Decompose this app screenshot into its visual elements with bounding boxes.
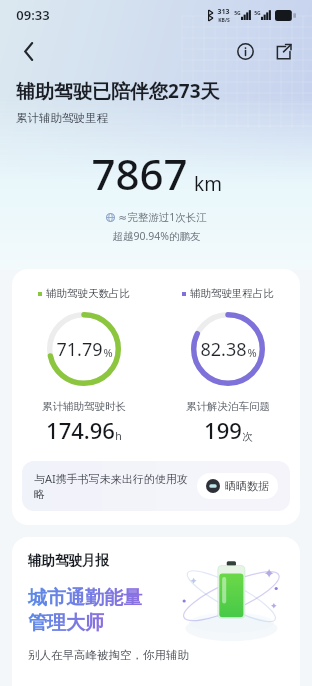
staticText: 199 [204,415,242,445]
staticText: 313 [217,7,230,17]
staticText: 城市通勤能量 [28,586,142,610]
button[interactable]: Info [228,34,262,68]
staticText: 次 [242,430,253,443]
staticText: 辅助驾驶天数占比 [46,287,130,300]
staticText: 晒晒数据 [225,479,269,493]
button[interactable]: 晒晒数据 [197,473,278,499]
staticText: 82.38 [200,337,247,362]
button[interactable]: 辅助驾驶月报 [12,537,300,686]
staticText: KB/S [218,17,230,24]
staticText: 累计辅助驾驶里程 [16,111,108,125]
staticText: 累计辅助驾驶时长 [42,400,126,413]
staticText: 辅助驾驶已陪伴您273天 [16,78,220,104]
staticText: 管理大师 [28,611,104,635]
staticText: 5G [254,10,261,17]
staticText: % [103,345,113,360]
staticText: 辅助驾驶月报 [28,552,109,569]
staticText: 与AI携手书写未来出行的使用攻略 [34,471,189,501]
staticText: % [247,345,257,360]
staticText: ≈完整游过1次长江 [118,210,207,224]
staticText: 71.79 [56,337,103,362]
staticText: 174.96 [46,415,115,445]
staticText: 别人在早高峰被掏空，你用辅助 [28,648,189,662]
staticText: 辅助驾驶里程占比 [190,287,274,300]
button[interactable]: Share [266,34,300,68]
staticText: h [115,429,122,443]
staticText: 超越90.94%的鹏友 [112,229,201,243]
staticText: 7867 [91,145,188,202]
staticText: 5G [234,10,241,17]
staticText: 累计解决泊车问题 [186,400,270,413]
staticText: km [194,171,222,197]
staticText: 09:33 [16,6,50,24]
button[interactable]: 与AI携手书写未来出行的使用攻略 [22,461,290,511]
button[interactable]: Back [12,34,46,68]
